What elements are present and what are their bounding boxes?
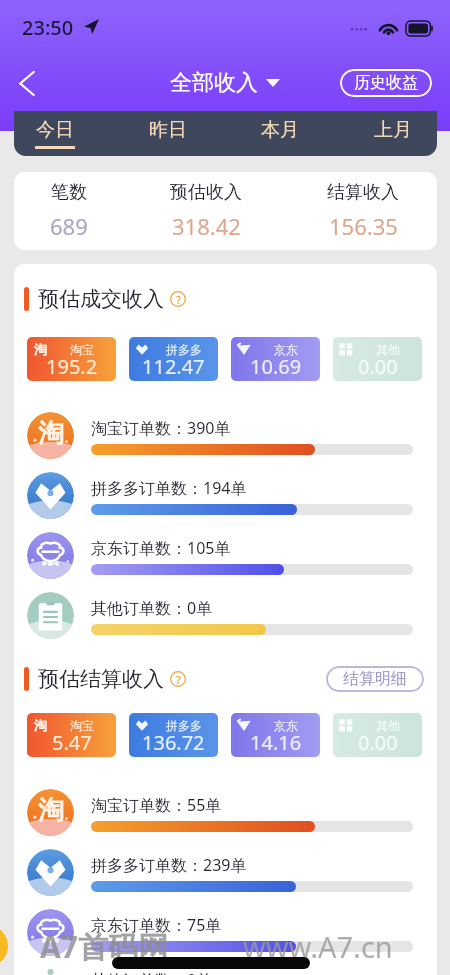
staticText: 上月 <box>374 118 412 142</box>
button[interactable]: 上月 <box>337 111 449 156</box>
button[interactable]: 客服 <box>0 925 8 967</box>
staticText: 23:50 <box>22 14 74 41</box>
staticText: 昨日 <box>149 118 187 142</box>
staticText: 今日 <box>36 118 74 142</box>
staticText: 10.69 <box>250 353 302 380</box>
staticText: 其他订单数：0单 <box>91 597 213 619</box>
button[interactable]: Back <box>5 61 49 105</box>
staticText: 结算收入 <box>327 181 399 204</box>
button[interactable]: 笔数 <box>19 181 119 241</box>
staticText: A7首码网 <box>40 926 168 967</box>
staticText: 全部收入 <box>170 69 258 97</box>
staticText: 14.16 <box>250 729 302 756</box>
button[interactable]: 拼多多 <box>129 337 218 381</box>
button[interactable]: 结算收入 <box>313 181 413 241</box>
staticText: 京东订单数：105单 <box>91 537 231 559</box>
staticText: 拼多多 <box>166 342 202 357</box>
staticText: 淘 <box>38 794 64 827</box>
button[interactable]: 其他 <box>333 713 422 757</box>
staticText: 淘宝 <box>70 718 94 733</box>
staticText: 预估收入 <box>170 181 242 204</box>
staticText: 5.47 <box>52 729 92 756</box>
staticText: 156.35 <box>329 211 398 241</box>
button[interactable]: 淘 <box>27 337 116 381</box>
button[interactable]: 京东订单数：105单 <box>27 532 413 579</box>
staticText: 历史收益 <box>354 73 418 93</box>
button[interactable]: 结算明细 <box>326 666 424 692</box>
button[interactable]: 全部收入 <box>170 69 280 97</box>
button[interactable]: 本月 <box>224 111 336 156</box>
staticText: 其他订单数：0单 <box>91 969 213 975</box>
staticText: 本月 <box>261 118 299 142</box>
staticText: 结算明细 <box>343 669 407 689</box>
button[interactable]: 其他订单数：0单 <box>27 592 413 639</box>
staticText: 拼多多订单数：239单 <box>91 854 247 876</box>
button[interactable]: 历史收益 <box>340 69 432 97</box>
staticText: 淘 <box>34 341 47 357</box>
staticText: 预估结算收入 <box>38 666 164 692</box>
staticText: 京东订单数：75单 <box>91 914 222 936</box>
staticText: 其他 <box>376 718 400 733</box>
staticText: 318.42 <box>172 211 241 241</box>
button[interactable]: 拼多多订单数：239单 <box>27 849 413 896</box>
staticText: 笔数 <box>51 181 87 204</box>
staticText: 0.00 <box>358 353 398 380</box>
staticText: 淘 <box>38 417 64 450</box>
button[interactable]: 其他 <box>333 337 422 381</box>
button[interactable]: 其他订单数：0单 <box>27 969 413 975</box>
staticText: www.A7.cn <box>243 927 393 966</box>
staticText: 京东 <box>274 718 298 733</box>
staticText: ? <box>176 672 181 687</box>
button[interactable]: 今日 <box>0 111 111 156</box>
staticText: 112.47 <box>142 353 205 380</box>
staticText: ? <box>176 292 181 307</box>
button[interactable]: 拼多多 <box>129 713 218 757</box>
button[interactable]: 拼多多订单数：194单 <box>27 472 413 519</box>
staticText: 136.72 <box>142 729 205 756</box>
staticText: 预估成交收入 <box>38 286 164 312</box>
staticText: 其他 <box>376 342 400 357</box>
staticText: 689 <box>50 211 88 241</box>
button[interactable]: 淘 <box>27 789 413 836</box>
button[interactable]: 预估收入 <box>156 181 256 241</box>
staticText: 淘宝 <box>70 342 94 357</box>
button[interactable]: 帮助 <box>170 291 186 307</box>
staticText: 拼多多 <box>166 718 202 733</box>
button[interactable]: 帮助 <box>170 671 186 687</box>
staticText: 淘宝订单数：55单 <box>91 794 222 816</box>
staticText: 淘 <box>34 717 47 733</box>
button[interactable]: 淘 <box>27 412 413 459</box>
button[interactable]: 京东 <box>231 713 320 757</box>
staticText: 拼多多订单数：194单 <box>91 477 247 499</box>
button[interactable]: 京东订单数：75单 <box>27 909 413 956</box>
staticText: 京东 <box>274 342 298 357</box>
staticText: 淘宝订单数：390单 <box>91 417 231 439</box>
button[interactable]: 京东 <box>231 337 320 381</box>
button[interactable]: 昨日 <box>112 111 224 156</box>
button[interactable]: 淘 <box>27 713 116 757</box>
staticText: 0.00 <box>358 729 398 756</box>
staticText: 195.2 <box>46 353 98 380</box>
